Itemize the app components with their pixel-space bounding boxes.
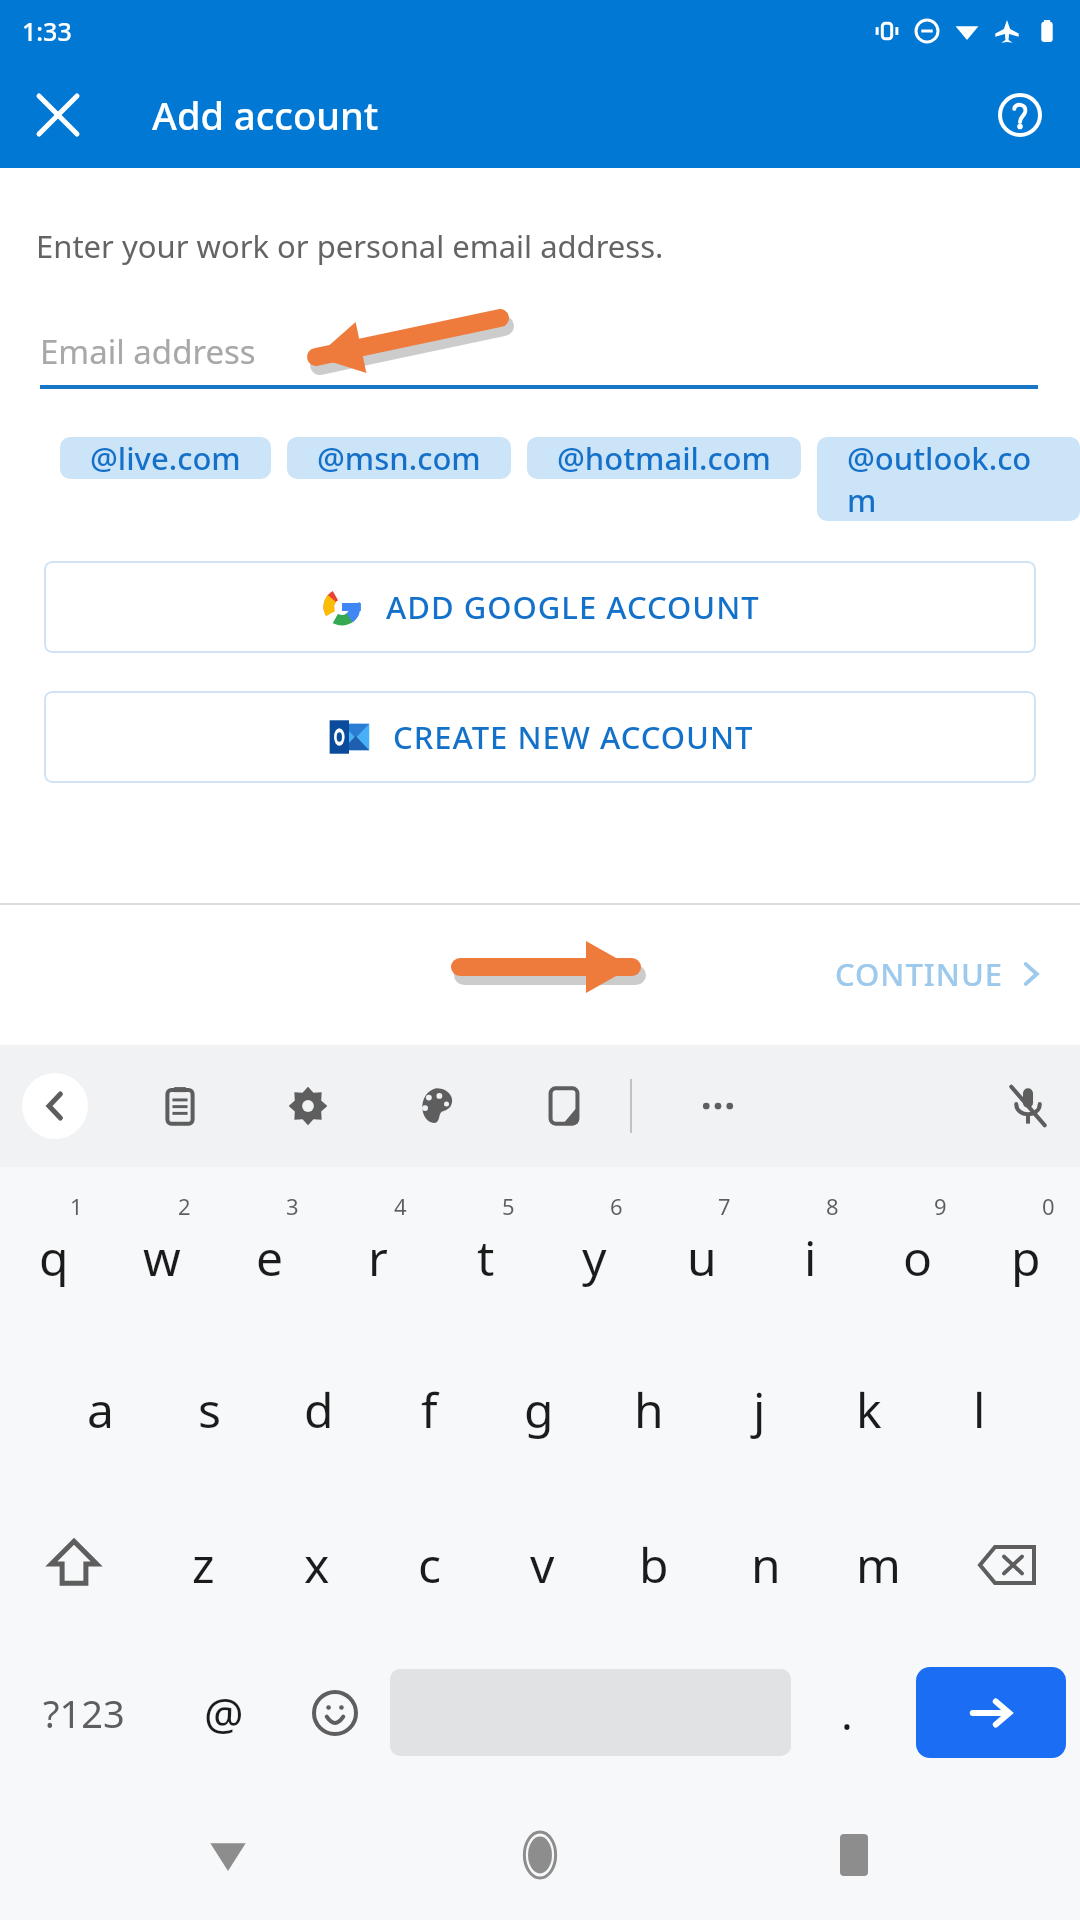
button[interactable]: 0: [972, 1167, 1080, 1332]
staticText: c: [418, 1532, 442, 1597]
button[interactable]: @hotmail.com: [527, 437, 801, 479]
button[interactable]: n: [710, 1487, 822, 1642]
staticText: @msn.com: [317, 437, 481, 479]
button[interactable]: ?123: [0, 1635, 168, 1790]
button[interactable]: c: [373, 1487, 486, 1642]
button[interactable]: @live.com: [60, 437, 271, 479]
button[interactable]: Back: [22, 1073, 88, 1139]
staticText: t: [477, 1225, 495, 1290]
staticText: ?123: [43, 1687, 125, 1739]
button[interactable]: Settings: [268, 1066, 348, 1146]
staticText: Email address: [40, 329, 256, 374]
button[interactable]: Clipboard: [140, 1066, 220, 1146]
button[interactable]: More: [678, 1066, 758, 1146]
button[interactable]: z: [147, 1487, 260, 1642]
staticText: k: [856, 1377, 882, 1442]
staticText: o: [903, 1225, 933, 1290]
button[interactable]: @: [168, 1635, 279, 1790]
staticText: h: [634, 1377, 664, 1442]
button[interactable]: s: [155, 1332, 264, 1487]
button[interactable]: l: [924, 1332, 1034, 1487]
button[interactable]: 6: [540, 1167, 648, 1332]
button[interactable]: Recents: [816, 1817, 892, 1893]
staticText: y: [582, 1225, 607, 1290]
staticText: Enter your work or personal email addres…: [36, 225, 664, 267]
staticText: @outlook.com: [847, 437, 1050, 521]
staticText: q: [39, 1225, 69, 1290]
button[interactable]: CREATE NEW ACCOUNT: [44, 691, 1036, 783]
staticText: 3: [286, 1191, 299, 1221]
staticText: j: [753, 1377, 766, 1442]
button[interactable]: 5: [432, 1167, 540, 1332]
button[interactable]: Backspace: [934, 1487, 1080, 1642]
button[interactable]: Back: [190, 1817, 266, 1893]
staticText: ADD GOOGLE ACCOUNT: [386, 586, 760, 628]
staticText: u: [687, 1225, 717, 1290]
staticText: d: [304, 1377, 334, 1442]
button[interactable]: b: [598, 1487, 710, 1642]
staticText: g: [524, 1377, 554, 1442]
staticText: 1:33: [22, 14, 72, 48]
button[interactable]: Enter: [916, 1667, 1066, 1758]
staticText: 8: [826, 1191, 839, 1221]
staticText: Add account: [152, 89, 379, 141]
button[interactable]: 2: [108, 1167, 216, 1332]
button[interactable]: 8: [756, 1167, 864, 1332]
button[interactable]: CONTINUE: [821, 937, 1058, 1011]
staticText: 5: [502, 1191, 515, 1221]
button[interactable]: Close: [22, 79, 94, 151]
staticText: m: [856, 1532, 901, 1597]
staticText: @hotmail.com: [557, 437, 771, 479]
staticText: a: [87, 1377, 114, 1442]
staticText: w: [143, 1225, 181, 1290]
staticText: @: [204, 1683, 244, 1743]
button[interactable]: .: [791, 1635, 902, 1790]
staticText: b: [639, 1532, 669, 1597]
button[interactable]: @msn.com: [287, 437, 511, 479]
staticText: s: [198, 1377, 221, 1442]
staticText: v: [530, 1532, 555, 1597]
button[interactable]: 4: [324, 1167, 432, 1332]
staticText: 4: [394, 1191, 407, 1221]
button[interactable]: Home: [502, 1817, 578, 1893]
button[interactable]: f: [374, 1332, 484, 1487]
button[interactable]: g: [484, 1332, 594, 1487]
button[interactable]: Emoji: [279, 1635, 390, 1790]
staticText: .: [841, 1683, 853, 1743]
button[interactable]: d: [264, 1332, 374, 1487]
staticText: l: [973, 1377, 986, 1442]
staticText: 7: [718, 1191, 731, 1221]
staticText: 2: [178, 1191, 191, 1221]
button[interactable]: 3: [216, 1167, 324, 1332]
staticText: x: [304, 1532, 330, 1597]
button[interactable]: x: [260, 1487, 373, 1642]
button[interactable]: 7: [648, 1167, 756, 1332]
button[interactable]: j: [704, 1332, 814, 1487]
button[interactable]: m: [822, 1487, 934, 1642]
button[interactable]: Shift: [0, 1487, 147, 1642]
button[interactable]: h: [594, 1332, 704, 1487]
button[interactable]: Theme: [396, 1066, 476, 1146]
staticText: n: [751, 1532, 781, 1597]
staticText: r: [368, 1225, 388, 1290]
staticText: @live.com: [90, 437, 241, 479]
button[interactable]: 9: [864, 1167, 972, 1332]
button[interactable]: a: [46, 1332, 155, 1487]
button[interactable]: 1: [0, 1167, 108, 1332]
staticText: p: [1011, 1225, 1041, 1290]
staticText: CONTINUE: [835, 953, 1004, 995]
staticText: 1: [70, 1191, 83, 1221]
button[interactable]: ADD GOOGLE ACCOUNT: [44, 561, 1036, 653]
button[interactable]: Sticker: [524, 1066, 604, 1146]
button[interactable]: v: [486, 1487, 598, 1642]
button[interactable]: Voice off: [988, 1066, 1068, 1146]
button[interactable]: k: [814, 1332, 924, 1487]
staticText: e: [256, 1225, 284, 1290]
staticText: z: [192, 1532, 215, 1597]
staticText: 9: [934, 1191, 947, 1221]
staticText: i: [804, 1225, 817, 1290]
staticText: 0: [1042, 1191, 1055, 1221]
button[interactable]: Help: [984, 79, 1056, 151]
button[interactable]: @outlook.com: [817, 437, 1080, 521]
